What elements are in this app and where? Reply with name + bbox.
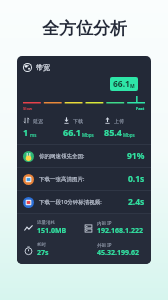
staticText: Slow <box>23 106 33 111</box>
staticText: ms <box>30 132 37 138</box>
staticText: 下载 <box>73 118 83 124</box>
staticText: 流量消耗 <box>37 220 55 226</box>
staticText: Mbps <box>123 132 135 138</box>
staticText: 66.1 <box>63 126 81 138</box>
button[interactable]: 你的网速领先全国: <box>17 145 151 167</box>
staticText: 2.4s <box>128 196 145 208</box>
staticText: Mbps <box>82 132 94 138</box>
staticText: 85.4 <box>104 126 122 138</box>
staticText: 你的网速领先全国: <box>39 152 127 160</box>
staticText: Fast <box>136 106 145 111</box>
staticText: 上传 <box>114 118 124 124</box>
staticText: M <box>130 83 135 90</box>
staticText: 全方位分析 <box>42 18 127 39</box>
staticText: 192.168.1.222 <box>97 226 143 236</box>
button[interactable]: 下载一张高清图片: <box>17 168 151 190</box>
staticText: 带宽 <box>36 63 50 72</box>
staticText: 外部 IP <box>97 242 112 248</box>
staticText: 91% <box>127 150 145 162</box>
other: Bandwidth <box>23 63 32 72</box>
staticText: 66.1 <box>113 78 130 90</box>
staticText: 延迟 <box>33 118 43 124</box>
staticText: 下载一张高清图片: <box>39 175 128 183</box>
staticText: 45.32.199.62 <box>97 248 139 258</box>
button[interactable]: 下载一段10分钟标清视频: <box>17 191 151 213</box>
staticText: 耗时 <box>37 242 46 248</box>
staticText: 151.0MB <box>37 226 67 236</box>
staticText: 内部 IP <box>97 220 112 226</box>
staticText: 下载一段10分钟标清视频: <box>39 198 128 206</box>
staticText: 0.1s <box>128 173 145 185</box>
staticText: 27s <box>37 248 49 258</box>
staticText: 1 <box>23 126 29 138</box>
